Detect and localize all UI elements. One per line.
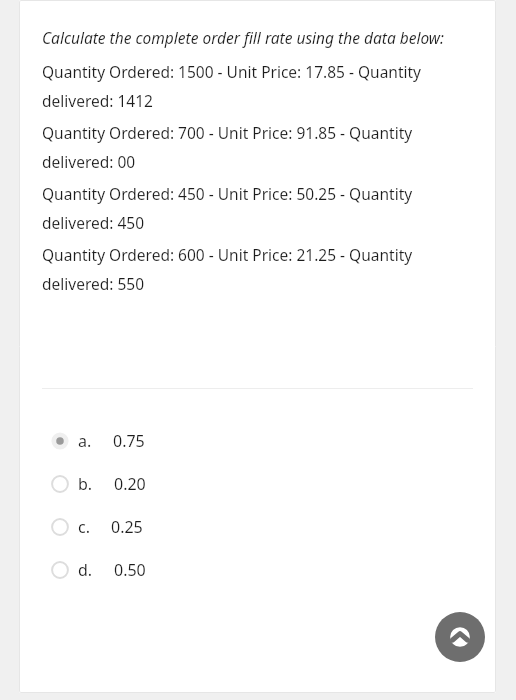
staticText: 0.20	[114, 473, 146, 495]
staticText: b.	[78, 473, 93, 495]
staticText: Calculate the complete order fill rate u…	[42, 27, 473, 48]
button[interactable]: b.	[42, 462, 473, 505]
staticText: c.	[78, 516, 90, 538]
staticText: d.	[78, 559, 93, 581]
staticText: Quantity Ordered: 1500 - Unit Price: 17.…	[42, 61, 473, 111]
staticText: Quantity Ordered: 600 - Unit Price: 21.2…	[42, 244, 473, 294]
staticText: Quantity Ordered: 700 - Unit Price: 91.8…	[42, 122, 473, 172]
button[interactable]: Scroll to top	[435, 612, 485, 662]
button[interactable]: c.	[42, 505, 473, 548]
staticText: a.	[78, 430, 92, 452]
staticText: 0.75	[113, 430, 145, 452]
staticText: 0.50	[114, 559, 146, 581]
staticText: Quantity Ordered: 450 - Unit Price: 50.2…	[42, 183, 473, 233]
button[interactable]: a.	[42, 419, 473, 462]
button[interactable]: d.	[42, 548, 473, 591]
staticText: 0.25	[111, 516, 143, 538]
